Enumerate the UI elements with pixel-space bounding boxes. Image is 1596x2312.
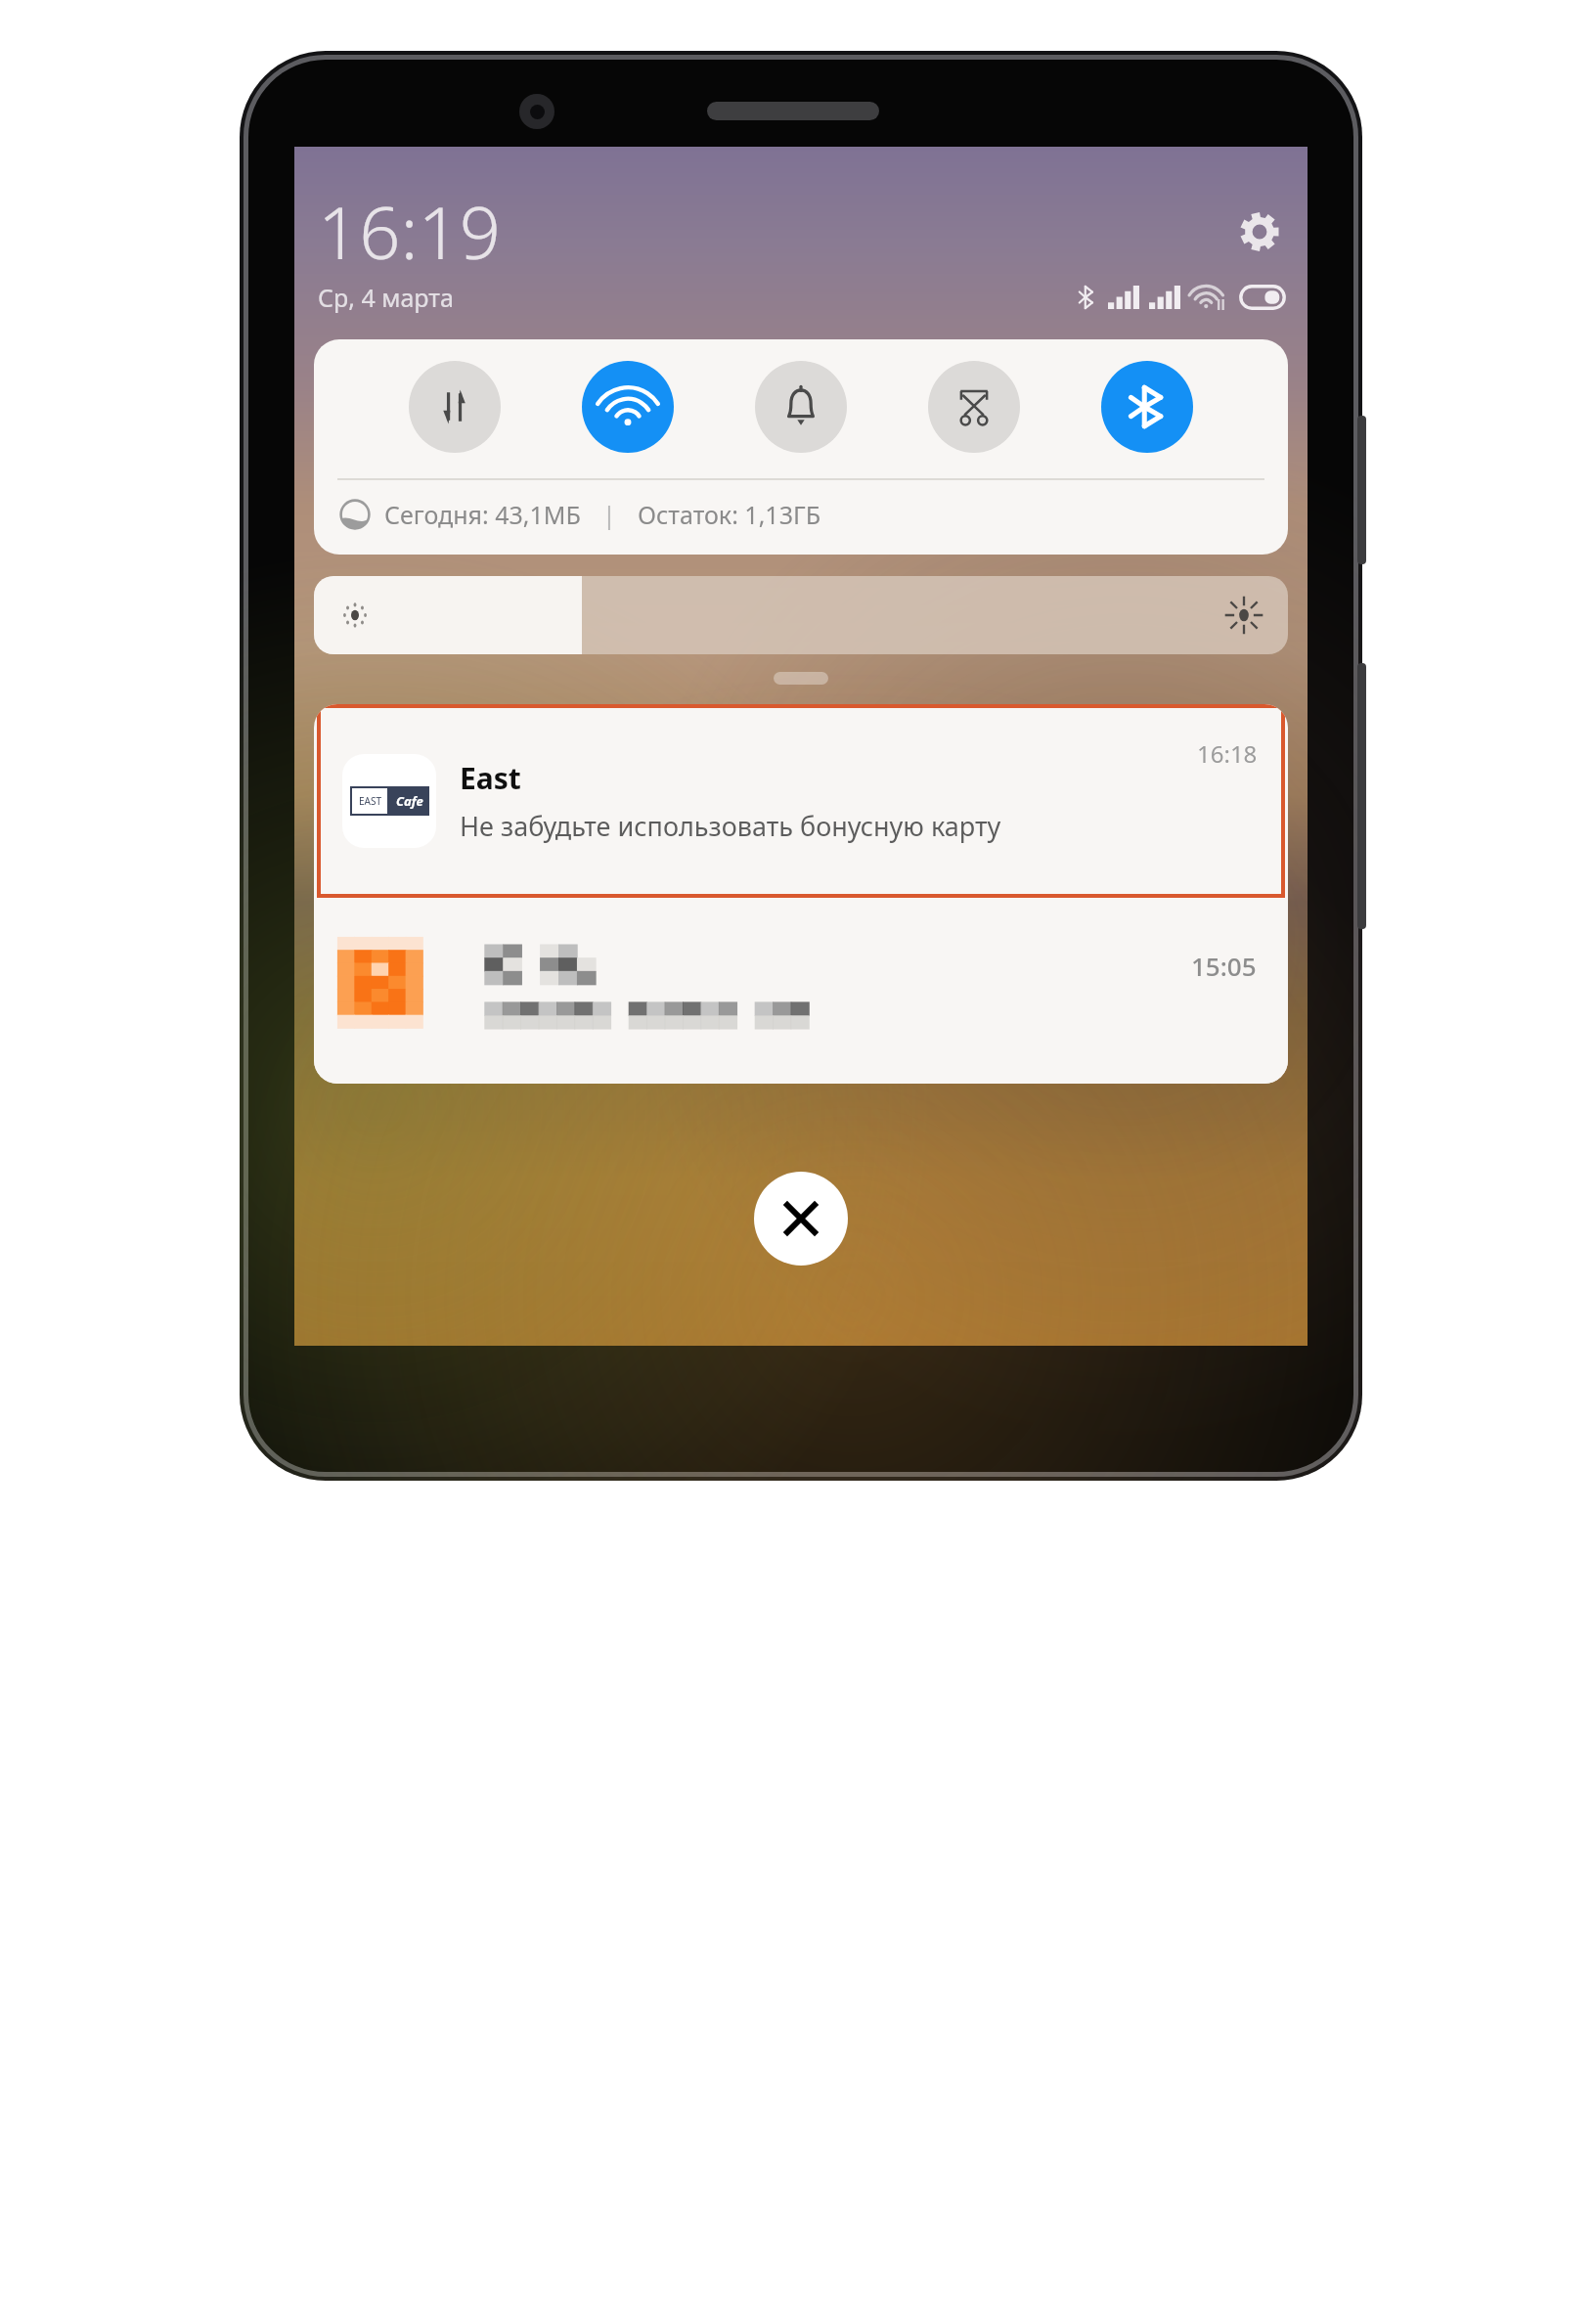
button[interactable]: Bluetooth xyxy=(1101,361,1193,453)
button[interactable]: Wi-Fi xyxy=(582,361,674,453)
staticText: Сегодня: 43,1МБ xyxy=(384,498,581,531)
staticText: 15:05 xyxy=(1191,949,1257,983)
button[interactable]: Brightness xyxy=(314,576,1288,654)
staticText: Ср, 4 марта xyxy=(318,281,454,314)
button[interactable]: Close xyxy=(754,1172,848,1266)
button[interactable]: Settings xyxy=(1231,203,1288,260)
button[interactable]: Сегодня: 43,1МБ xyxy=(314,480,1288,549)
staticText: 16:19 xyxy=(318,182,502,281)
staticText: East xyxy=(460,758,521,798)
button[interactable]: Mobile data xyxy=(409,361,501,453)
button[interactable]: Sound xyxy=(755,361,847,453)
staticText: | xyxy=(602,498,616,531)
staticText: 16:18 xyxy=(1197,737,1258,770)
button[interactable]: EAST xyxy=(321,708,1281,894)
staticText: Остаток: 1,13ГБ xyxy=(638,498,821,531)
button[interactable]: Screenshot xyxy=(928,361,1020,453)
staticText: Не забудьте использовать бонусную карту xyxy=(460,808,1001,844)
staticText: Cafe xyxy=(396,792,423,810)
button[interactable]: 15:05 xyxy=(314,898,1288,1084)
staticText: EAST xyxy=(359,794,381,808)
